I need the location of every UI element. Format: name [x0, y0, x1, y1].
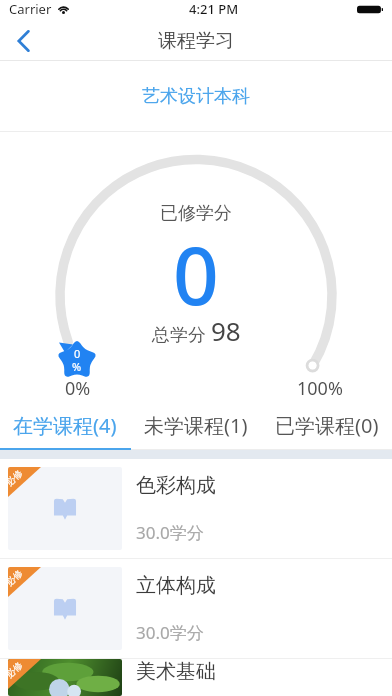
staticText: 30.0学分 [136, 521, 204, 544]
staticText: 0 [74, 346, 81, 361]
staticText: 总学分 [152, 322, 211, 347]
staticText: 98 [211, 313, 241, 348]
staticText: 色彩构成 [136, 473, 216, 498]
staticText: Carrier [9, 0, 52, 18]
staticText: 未学课程(1) [144, 412, 248, 439]
staticText: 100% [297, 376, 343, 401]
button[interactable]: 必修 [0, 559, 392, 658]
staticText: 美术基础 [136, 659, 216, 684]
staticText: 30.0学分 [136, 621, 204, 644]
staticText: % [72, 359, 82, 374]
staticText: 已修学分 [160, 202, 232, 225]
staticText: 0% [65, 376, 91, 401]
staticText: 课程学习 [158, 29, 234, 53]
staticText: 必修 [8, 567, 24, 588]
staticText: 0 [173, 219, 219, 328]
button[interactable]: 艺术设计本科 [0, 61, 392, 131]
button[interactable]: 在学课程(4) [0, 403, 130, 447]
staticText: 艺术设计本科 [142, 85, 250, 108]
button[interactable]: Back [0, 22, 46, 60]
button[interactable]: 必修 [0, 659, 392, 696]
staticText: 必修 [8, 467, 24, 488]
staticText: 已学课程(0) [275, 412, 379, 439]
staticText: 在学课程(4) [13, 412, 117, 439]
staticText: 4:21 PM [189, 0, 239, 18]
staticText: 立体构成 [136, 573, 216, 598]
button[interactable]: 必修 [0, 459, 392, 558]
staticText: 必修 [8, 659, 24, 680]
button[interactable]: 未学课程(1) [130, 403, 261, 447]
button[interactable]: 已学课程(0) [261, 403, 392, 447]
